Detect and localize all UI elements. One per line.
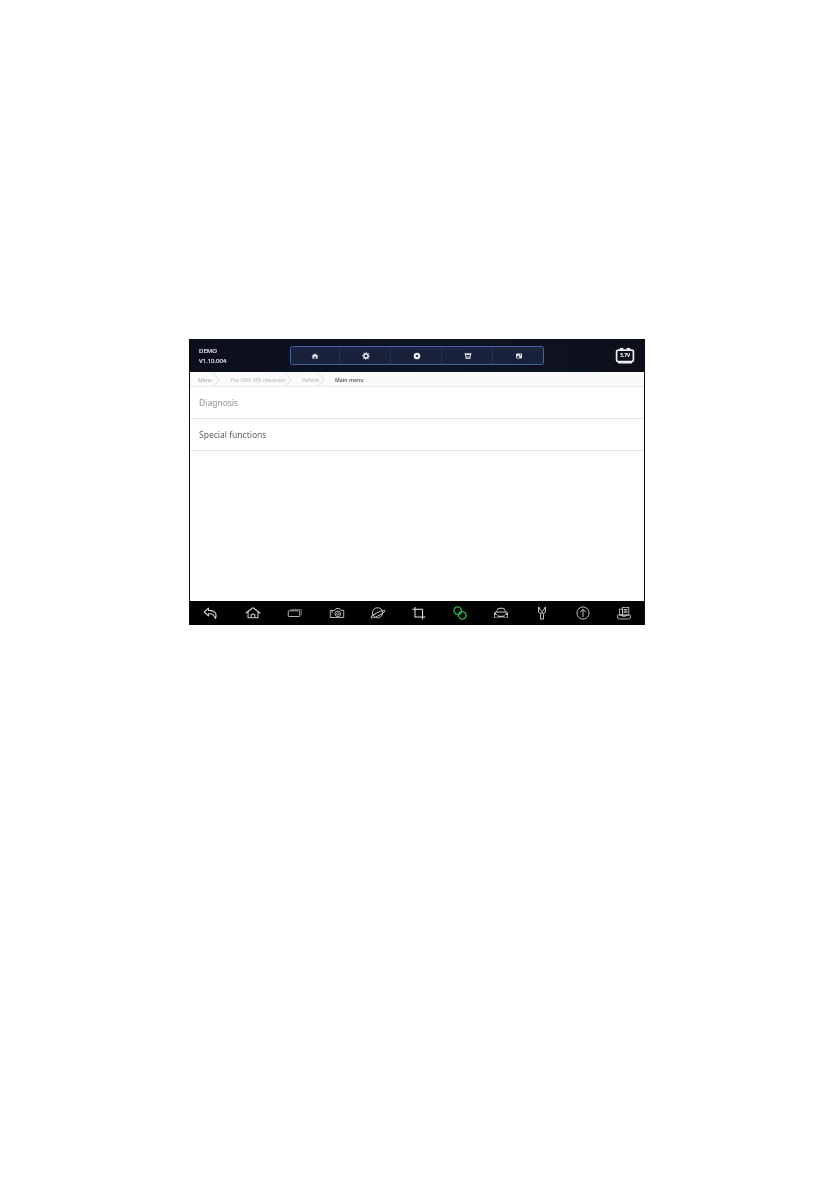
button[interactable]: Menu (190, 372, 220, 387)
button[interactable]: Screenshot (398, 601, 439, 625)
staticText: Main menu (335, 376, 364, 383)
button[interactable]: Main menu (325, 372, 395, 387)
button[interactable]: Vehicle (480, 601, 521, 625)
button[interactable]: Browser (357, 601, 398, 625)
staticText: Menu (198, 376, 213, 383)
staticText: Special functions (199, 429, 267, 441)
button[interactable]: Record (391, 346, 442, 365)
button[interactable]: Special functions (190, 419, 644, 450)
button[interactable]: Camera (316, 601, 357, 625)
button[interactable]: Diagnosis (190, 387, 644, 418)
staticText: 3.7V (620, 352, 631, 359)
button[interactable]: Screenshot (493, 346, 544, 365)
button[interactable]: The 10th VIN character (220, 372, 292, 387)
button[interactable]: Upload (562, 601, 603, 625)
button[interactable]: Battery voltage 3.7 volts (615, 347, 635, 365)
button[interactable]: Connection (439, 601, 480, 625)
button[interactable]: Back (190, 601, 232, 625)
staticText: V1.10.004 (199, 357, 227, 365)
staticText: Vehicle (302, 376, 320, 383)
button[interactable]: Home (290, 346, 340, 365)
button[interactable]: Settings (340, 346, 391, 365)
button[interactable]: Vehicle (292, 372, 325, 387)
button[interactable]: Recent apps (274, 601, 316, 625)
staticText: The 10th VIN character (230, 376, 286, 383)
button[interactable]: Home (232, 601, 274, 625)
staticText: DEMO (199, 347, 217, 355)
button[interactable]: Tools (521, 601, 562, 625)
button[interactable]: Print (442, 346, 493, 365)
button[interactable]: Manual (603, 601, 644, 625)
staticText: Diagnosis (199, 397, 239, 409)
